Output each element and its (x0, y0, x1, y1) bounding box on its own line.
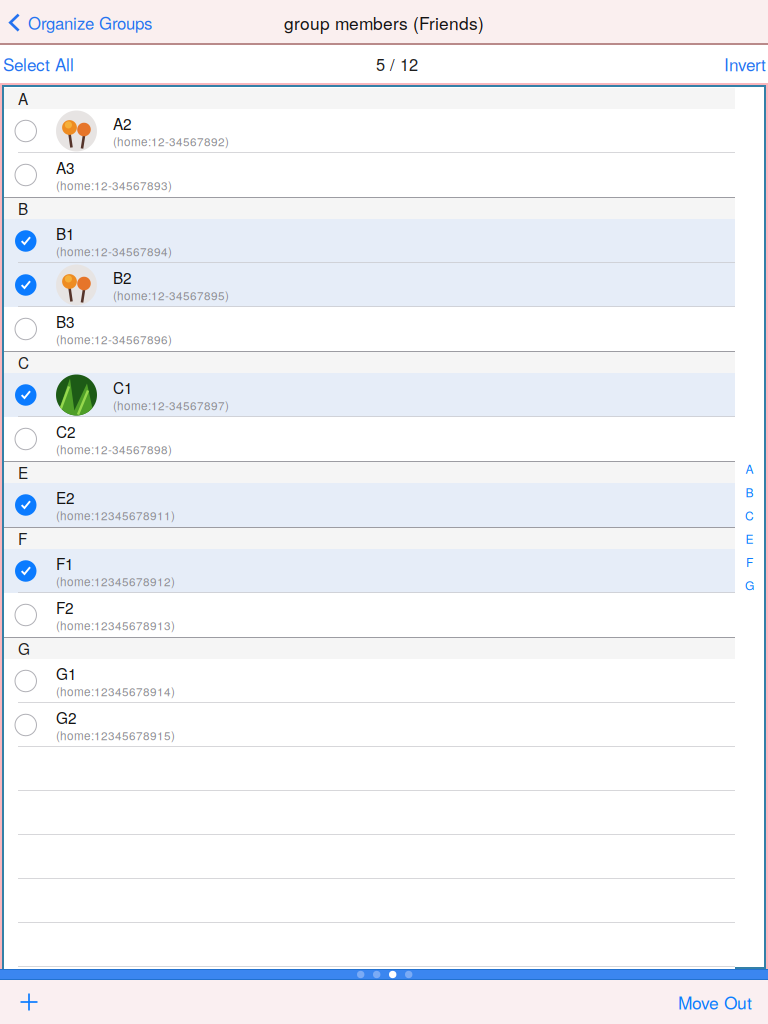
staticText: F2 (56, 596, 74, 618)
staticText: F1 (56, 552, 74, 574)
staticText: C2 (56, 420, 76, 442)
staticText: G (18, 637, 30, 659)
staticText: G2 (56, 706, 77, 728)
staticText: A (18, 87, 28, 109)
staticText: (home:12-34567897) (113, 397, 229, 414)
button[interactable]: C (735, 504, 764, 527)
button[interactable]: B2 (4, 263, 735, 307)
staticText: C1 (113, 376, 133, 398)
button[interactable]: F (735, 550, 764, 573)
staticText: (home:12345678914) (56, 683, 175, 700)
staticText: C (745, 507, 754, 524)
button[interactable]: B3 (4, 307, 735, 351)
staticText: Select All (3, 52, 74, 76)
staticText: (home:12345678913) (56, 617, 175, 634)
staticText: B3 (56, 310, 75, 332)
staticText: F (18, 527, 27, 549)
button[interactable]: A3 (4, 153, 735, 197)
staticText: (home:12345678911) (56, 507, 175, 524)
button[interactable]: B1 (4, 219, 735, 263)
button[interactable]: F1 (4, 549, 735, 593)
staticText: F (746, 553, 753, 570)
staticText: (home:12345678915) (56, 727, 175, 744)
button[interactable]: Select All (0, 45, 84, 83)
button[interactable]: E2 (4, 483, 735, 527)
button[interactable]: Invert (714, 45, 768, 83)
staticText: B2 (113, 266, 132, 288)
button[interactable]: E (735, 527, 764, 550)
staticText: (home:12-34567893) (56, 177, 172, 194)
staticText: E (18, 461, 28, 483)
button[interactable]: Organize Groups (0, 0, 162, 44)
staticText: A3 (56, 156, 75, 178)
staticText: E2 (56, 486, 75, 508)
staticText: (home:12-34567894) (56, 243, 172, 260)
staticText: E (745, 530, 753, 547)
button[interactable]: G (735, 573, 764, 597)
staticText: G1 (56, 662, 77, 684)
button[interactable]: C2 (4, 417, 735, 461)
staticText: (home:12345678912) (56, 573, 175, 590)
button[interactable]: Move Out (664, 980, 768, 1024)
button[interactable]: C1 (4, 373, 735, 417)
staticText: group members (Friends) (284, 10, 484, 35)
button[interactable]: A (735, 457, 764, 480)
button[interactable]: B (735, 480, 764, 504)
staticText: (home:12-34567898) (56, 441, 172, 458)
staticText: 5 / 12 (376, 52, 418, 76)
staticText: B (745, 483, 753, 501)
staticText: A2 (113, 112, 132, 134)
staticText: Move Out (678, 990, 752, 1014)
button[interactable]: G2 (4, 703, 735, 747)
button[interactable]: Add member (0, 980, 52, 1024)
staticText: (home:12-34567895) (113, 287, 229, 304)
staticText: Organize Groups (28, 11, 152, 34)
staticText: (home:12-34567892) (113, 133, 229, 150)
staticText: B (18, 197, 28, 219)
button[interactable]: A2 (4, 109, 735, 153)
staticText: Invert (724, 52, 766, 76)
button[interactable]: G1 (4, 659, 735, 703)
button[interactable]: F2 (4, 593, 735, 637)
staticText: B1 (56, 222, 75, 244)
staticText: C (18, 351, 29, 373)
staticText: A (745, 460, 753, 477)
staticText: G (745, 577, 754, 594)
staticText: (home:12-34567896) (56, 331, 172, 348)
